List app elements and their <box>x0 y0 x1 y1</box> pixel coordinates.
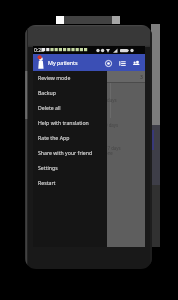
button[interactable]: Sort list <box>115 56 129 70</box>
staticText: one <box>105 150 113 156</box>
button[interactable]: Share with your friend <box>33 145 107 160</box>
button[interactable]: Restart <box>33 175 107 190</box>
staticText: Restart <box>38 179 56 186</box>
staticText: Review mode <box>38 74 71 81</box>
staticText: Settings <box>38 164 58 171</box>
button[interactable]: Filter <box>101 56 115 70</box>
staticText: 3 <box>140 74 143 81</box>
staticText: Help with translation <box>38 119 89 126</box>
staticText: Backup <box>38 89 56 96</box>
button[interactable]: Add patient <box>129 56 143 70</box>
staticText: My patients <box>48 59 78 66</box>
button[interactable]: Rate the App <box>33 130 107 145</box>
staticText: 9 days <box>105 122 119 128</box>
staticText: days <box>107 97 117 103</box>
staticText: Share with your friend <box>38 149 93 156</box>
staticText: Delete all <box>38 104 61 111</box>
staticText: 0:28 <box>34 47 44 54</box>
staticText: Rate the App <box>38 134 70 141</box>
button[interactable]: Delete all <box>33 100 107 115</box>
button[interactable]: Help with translation <box>33 115 107 130</box>
button[interactable]: Review mode <box>33 70 107 85</box>
button[interactable]: Backup <box>33 85 107 100</box>
staticText: 17 days <box>105 145 121 151</box>
button[interactable]: Settings <box>33 160 107 175</box>
